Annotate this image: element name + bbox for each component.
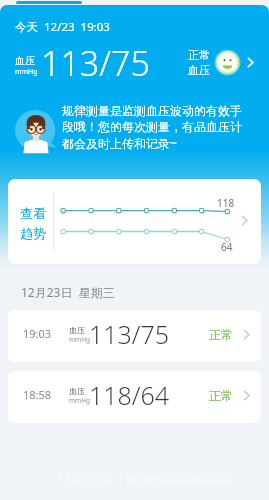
staticText: 正常 bbox=[209, 388, 233, 403]
staticText: 118/64 bbox=[89, 378, 170, 412]
staticText: mmHg bbox=[15, 67, 38, 77]
staticText: mmHg bbox=[69, 335, 90, 344]
staticText: 64 bbox=[221, 240, 233, 254]
staticText: 19:03 bbox=[23, 326, 52, 341]
staticText: mmHg bbox=[69, 396, 90, 405]
staticText: 18:58 bbox=[23, 387, 52, 402]
staticText: 血压 bbox=[69, 386, 85, 396]
staticText: 113/75 bbox=[41, 40, 150, 86]
button[interactable]: 19:03 bbox=[8, 310, 261, 362]
staticText: 12月23日 星期三 bbox=[21, 284, 115, 300]
staticText: 118 bbox=[217, 196, 235, 210]
button[interactable]: 查看 bbox=[8, 179, 261, 264]
staticText: 血压 bbox=[188, 63, 210, 77]
staticText: 今天 12/23 19:03 bbox=[15, 19, 110, 35]
staticText: 血压 bbox=[69, 325, 85, 335]
staticText: 查看 bbox=[20, 205, 46, 221]
staticText: 血压 bbox=[15, 54, 35, 67]
staticText: 正常 bbox=[209, 327, 233, 342]
staticText: 规律测量是监测血压波动的有效手段哦！您的每次测量，有品血压计都会及时上传和记录~ bbox=[62, 103, 250, 151]
button[interactable]: 18:58 bbox=[8, 371, 261, 423]
staticText: 趋势 bbox=[20, 225, 46, 241]
staticText: 正常 bbox=[188, 48, 210, 62]
staticText: 113/75 bbox=[89, 317, 170, 351]
button[interactable]: 正常 bbox=[188, 48, 254, 77]
